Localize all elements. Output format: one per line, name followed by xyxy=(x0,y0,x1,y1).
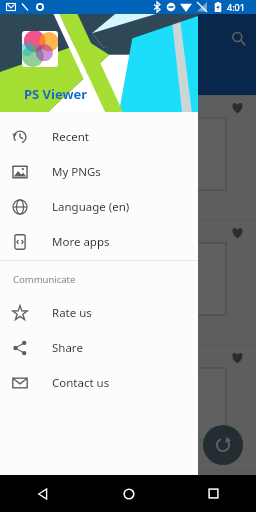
button[interactable]: Recents xyxy=(171,475,256,512)
staticText: Language (en) xyxy=(52,199,130,215)
button[interactable]: Favorite xyxy=(226,471,248,493)
staticText: More apps xyxy=(52,234,110,250)
button[interactable]: FAVORITES xyxy=(80,70,150,92)
button[interactable]: More apps xyxy=(0,224,198,259)
button[interactable]: My PNGs xyxy=(0,154,198,189)
button[interactable]: FILES xyxy=(10,70,80,92)
staticText: Recent xyxy=(52,129,89,145)
staticText: Rate us xyxy=(52,305,92,321)
staticText: My PNGs xyxy=(52,164,101,180)
button[interactable]: Favorite xyxy=(0,345,256,470)
button[interactable]: Favorite xyxy=(0,470,256,512)
button[interactable]: Favorite xyxy=(226,96,248,118)
button[interactable]: Home xyxy=(86,475,171,512)
button[interactable]: Favorite xyxy=(0,95,256,220)
button[interactable]: Back xyxy=(0,475,86,512)
button[interactable]: Contact us xyxy=(0,365,198,400)
staticText: FAVORITES xyxy=(80,70,132,84)
button[interactable]: Language (en) xyxy=(0,189,198,224)
staticText: 4:01 xyxy=(227,1,245,13)
button[interactable]: Rate us xyxy=(0,295,198,330)
button[interactable]: Favorite xyxy=(226,221,248,243)
staticText: Share xyxy=(52,340,83,356)
button[interactable]: Refresh xyxy=(203,425,243,465)
button[interactable]: Share xyxy=(0,330,198,365)
button[interactable]: INFO xyxy=(150,70,210,92)
staticText: Communicate xyxy=(13,273,76,286)
button[interactable]: Favorite xyxy=(226,346,248,368)
button[interactable]: Search xyxy=(223,23,253,53)
staticText: Contact us xyxy=(52,375,110,391)
button[interactable]: Menu xyxy=(10,24,38,52)
staticText: filename(2).ps xyxy=(10,196,73,210)
button[interactable]: Favorite xyxy=(0,220,256,345)
button[interactable]: Recent xyxy=(0,119,198,154)
staticText: PS Viewer xyxy=(24,85,88,103)
